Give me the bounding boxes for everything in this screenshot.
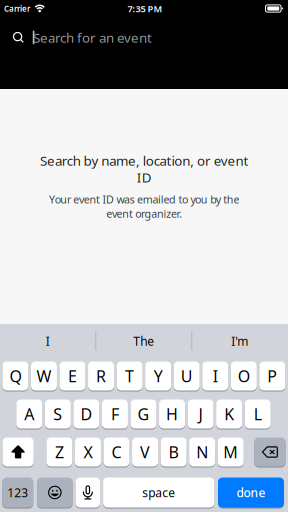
button[interactable]: Dictate (76, 477, 100, 507)
staticText: T (125, 365, 134, 387)
staticText: U (181, 365, 193, 387)
staticText: B (169, 441, 179, 463)
staticText: Z (55, 441, 64, 463)
button[interactable]: I'm (192, 324, 287, 357)
button[interactable]: D (73, 399, 99, 428)
staticText: A (24, 403, 34, 425)
staticText: 7:35 PM (127, 2, 162, 15)
staticText: Search for an event (33, 29, 152, 46)
staticText: J (199, 403, 203, 425)
button[interactable]: G (130, 399, 156, 428)
staticText: W (36, 365, 51, 387)
button[interactable]: M (218, 437, 244, 466)
button[interactable]: J (188, 399, 214, 428)
staticText: L (254, 403, 262, 425)
staticText: N (196, 441, 208, 463)
button[interactable]: B (161, 437, 187, 466)
staticText: F (111, 403, 119, 425)
button[interactable]: Delete (254, 437, 285, 466)
button[interactable]: space (103, 477, 214, 507)
button[interactable]: S (45, 399, 71, 428)
staticText: S (53, 403, 62, 425)
staticText: The (133, 333, 154, 349)
button[interactable]: Numbers (2, 477, 33, 507)
staticText: Y (154, 365, 163, 387)
button[interactable]: A (16, 399, 42, 428)
staticText: Search by name, location, or event ID (40, 152, 248, 186)
staticText: E (68, 365, 77, 387)
button[interactable]: Emoji (37, 477, 73, 507)
staticText: space (142, 484, 175, 500)
button[interactable]: L (245, 399, 271, 428)
staticText: Your event ID was emailed to you by the … (49, 192, 239, 221)
button[interactable]: I (202, 361, 228, 390)
button[interactable]: E (59, 361, 85, 390)
button[interactable]: H (159, 399, 185, 428)
staticText: I (46, 333, 50, 349)
staticText: H (166, 403, 178, 425)
staticText: O (238, 365, 250, 387)
button[interactable]: done (218, 477, 284, 507)
button[interactable]: R (88, 361, 114, 390)
button[interactable]: V (132, 437, 158, 466)
button[interactable]: Shift (2, 437, 34, 466)
staticText: K (224, 403, 234, 425)
staticText: V (140, 441, 150, 463)
button[interactable]: W (31, 361, 57, 390)
staticText: I (213, 365, 218, 387)
button[interactable]: O (231, 361, 257, 390)
button[interactable]: I (0, 324, 95, 357)
button[interactable]: The (96, 324, 191, 357)
button[interactable]: K (216, 399, 242, 428)
staticText: M (223, 441, 238, 463)
button[interactable]: Q (2, 361, 28, 390)
staticText: 123 (7, 484, 28, 500)
staticText: P (267, 365, 277, 387)
button[interactable]: U (174, 361, 200, 390)
button[interactable]: Search for an event (0, 20, 288, 54)
button[interactable]: F (102, 399, 128, 428)
staticText: R (96, 365, 106, 387)
staticText: X (83, 441, 92, 463)
staticText: G (137, 403, 149, 425)
button[interactable]: Z (46, 437, 72, 466)
staticText: Carrier (4, 3, 30, 14)
button[interactable]: T (117, 361, 143, 390)
staticText: I'm (231, 333, 248, 349)
button[interactable]: N (189, 437, 215, 466)
staticText: done (236, 484, 265, 500)
button[interactable]: Y (145, 361, 171, 390)
button[interactable]: P (259, 361, 285, 390)
button[interactable]: C (103, 437, 129, 466)
button[interactable]: X (75, 437, 101, 466)
staticText: Q (9, 365, 21, 387)
staticText: C (111, 441, 121, 463)
staticText: D (80, 403, 92, 425)
